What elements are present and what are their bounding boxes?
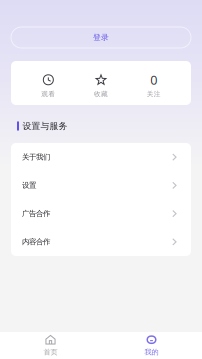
- staticText: 设置与服务: [22, 120, 67, 132]
- button[interactable]: 登录: [11, 27, 191, 48]
- staticText: 广告合作: [22, 209, 50, 218]
- button[interactable]: 观看: [22, 63, 75, 103]
- button[interactable]: 关于我们: [11, 143, 191, 171]
- staticText: 收藏: [94, 90, 108, 98]
- staticText: 首页: [43, 347, 57, 357]
- button[interactable]: 收藏: [75, 63, 127, 103]
- button[interactable]: 广告合作: [11, 199, 191, 228]
- staticText: 0: [150, 71, 157, 88]
- staticText: 关于我们: [22, 152, 50, 162]
- button[interactable]: 首页: [0, 332, 101, 359]
- staticText: 观看: [41, 90, 55, 98]
- staticText: 内容合作: [22, 237, 50, 247]
- button[interactable]: 我的: [101, 332, 202, 359]
- button[interactable]: 设置: [11, 171, 191, 199]
- button[interactable]: 内容合作: [11, 228, 191, 256]
- staticText: 关注: [147, 90, 161, 98]
- staticText: 登录: [93, 33, 109, 42]
- button[interactable]: 0: [127, 63, 180, 103]
- staticText: 我的: [144, 347, 158, 357]
- staticText: 设置: [22, 181, 36, 190]
